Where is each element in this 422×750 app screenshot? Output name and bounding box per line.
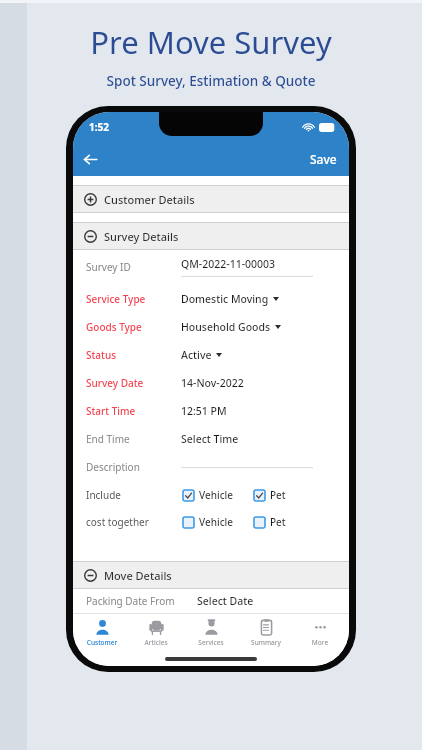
button[interactable]: Customer — [76, 617, 128, 649]
button[interactable]: Survey Details — [73, 222, 349, 250]
button[interactable]: More — [294, 617, 346, 649]
staticText: Goods Type — [86, 320, 181, 334]
button[interactable]: Survey ID — [73, 253, 349, 281]
button[interactable]: Goods Type — [73, 313, 349, 341]
staticText: Select Time — [181, 432, 239, 446]
staticText: Domestic Moving — [181, 292, 269, 306]
staticText: 1:52 — [89, 120, 109, 134]
staticText: Pre Move Survey — [0, 21, 422, 63]
staticText: Spot Survey, Estimation & Quote — [0, 72, 422, 90]
button[interactable]: Articles — [130, 617, 182, 649]
staticText: Active — [181, 348, 212, 362]
button[interactable]: Start Time — [73, 397, 349, 425]
staticText: Survey Date — [86, 376, 181, 390]
staticText: Services — [185, 638, 237, 647]
staticText: Start Time — [86, 404, 181, 418]
button[interactable]: Save — [298, 145, 349, 173]
staticText: Customer Details — [104, 192, 195, 207]
staticText: cost together — [86, 515, 181, 529]
staticText: Save — [310, 151, 337, 167]
staticText: Select Date — [197, 594, 254, 608]
staticText: 14-Nov-2022 — [181, 376, 244, 390]
staticText: Summary — [240, 638, 292, 647]
staticText: Pet — [270, 515, 286, 529]
button[interactable]: Services — [185, 617, 237, 649]
button[interactable]: Pet — [252, 486, 288, 504]
button[interactable]: Survey Date — [73, 369, 349, 397]
button[interactable]: End Time — [73, 425, 349, 453]
button[interactable]: Pet — [252, 513, 288, 531]
staticText: Vehicle — [199, 515, 234, 529]
staticText: More — [294, 638, 346, 647]
staticText: Include — [86, 488, 181, 502]
button[interactable]: Description — [73, 453, 349, 481]
button[interactable]: Back — [73, 142, 107, 176]
staticText: Description — [86, 460, 181, 474]
staticText: Survey ID — [86, 260, 181, 274]
staticText: Status — [86, 348, 181, 362]
button[interactable]: Packing Date From — [73, 589, 349, 613]
staticText: Customer — [76, 638, 128, 647]
staticText: Articles — [130, 638, 182, 647]
button[interactable]: Move Details — [73, 561, 349, 589]
button[interactable]: Vehicle — [181, 486, 236, 504]
staticText: Service Type — [86, 292, 181, 306]
staticText: Survey Details — [104, 229, 179, 244]
staticText: 12:51 PM — [181, 404, 227, 418]
staticText: Move Details — [104, 568, 172, 583]
button[interactable]: Customer Details — [73, 185, 349, 213]
staticText: End Time — [86, 432, 181, 446]
staticText: Pet — [270, 488, 286, 502]
button[interactable]: Service Type — [73, 285, 349, 313]
staticText: Vehicle — [199, 488, 234, 502]
button[interactable]: Summary — [240, 617, 292, 649]
staticText: QM-2022-11-00003 — [181, 257, 276, 271]
button[interactable]: Vehicle — [181, 513, 236, 531]
button[interactable]: Status — [73, 341, 349, 369]
staticText: Packing Date From — [86, 594, 175, 608]
staticText: Household Goods — [181, 320, 271, 334]
